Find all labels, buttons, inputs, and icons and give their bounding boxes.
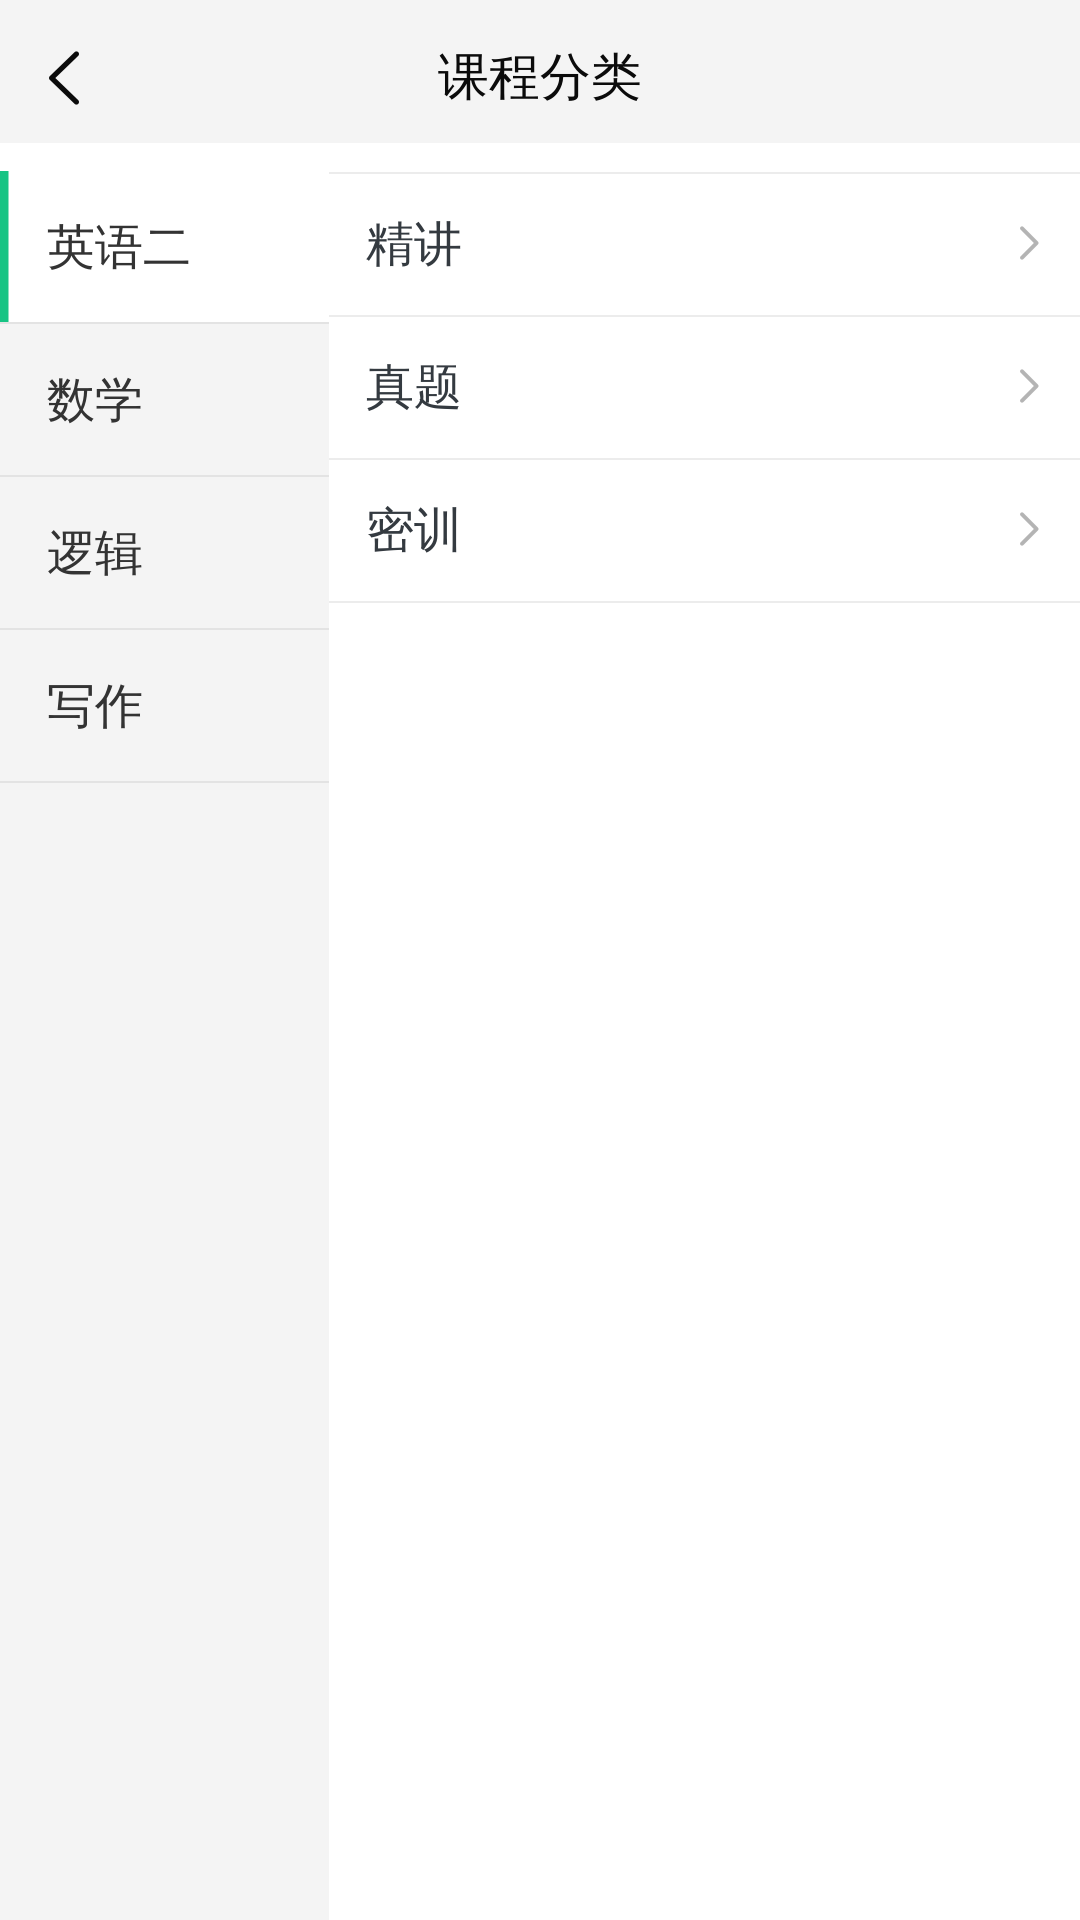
button[interactable]: 写作 [0,630,329,783]
button[interactable]: 英语二 [0,143,329,324]
staticText: 精讲 [366,215,462,274]
button[interactable]: 数学 [0,324,329,477]
staticText: 课程分类 [438,46,642,109]
button[interactable]: 精讲 [329,174,1080,317]
button[interactable]: 密训 [329,460,1080,603]
staticText: 密训 [366,501,462,560]
staticText: 真题 [366,358,462,417]
staticText: 写作 [47,677,143,736]
staticText: 逻辑 [47,524,143,583]
button[interactable]: 真题 [329,317,1080,460]
button[interactable]: 逻辑 [0,477,329,630]
staticText: 数学 [47,371,143,430]
button[interactable]: Back [0,0,160,143]
staticText: 英语二 [47,218,191,277]
